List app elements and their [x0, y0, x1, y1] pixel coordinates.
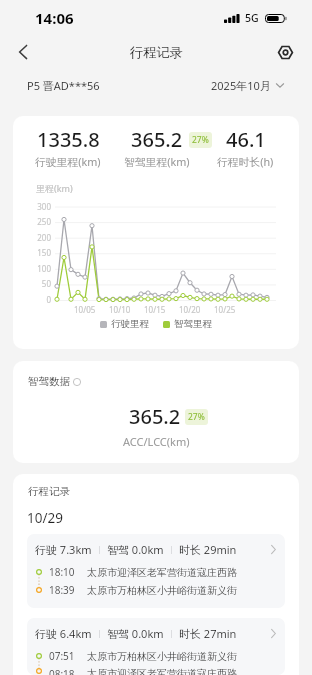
staticText: 智驾里程 — [174, 318, 212, 330]
staticText: 250 — [37, 216, 51, 227]
staticText: 27% — [192, 134, 209, 146]
staticText: 智驾 0.0km — [107, 542, 164, 557]
staticText: 46.1 — [226, 126, 266, 153]
button[interactable]: P5 晋AD***56 — [27, 78, 100, 93]
staticText: 365.2 — [129, 403, 181, 430]
button[interactable]: 2025年10月 — [211, 78, 284, 93]
staticText: 智驾里程(km) — [124, 154, 190, 169]
staticText: 行程记录 — [28, 485, 70, 498]
staticText: 10/20 — [179, 304, 201, 315]
staticText: 10/10 — [109, 304, 131, 315]
staticText: 10/29 — [27, 509, 63, 527]
staticText: 365.2 — [131, 126, 183, 153]
staticText: 10/05 — [74, 304, 96, 315]
staticText: 2025年10月 — [211, 78, 271, 93]
staticText: 智驾 0.0km — [107, 626, 164, 641]
staticText: 14:06 — [35, 8, 74, 28]
staticText: 行驶里程 — [111, 318, 149, 330]
staticText: 太原市万柏林区小井峪街道新义街 — [87, 584, 237, 597]
staticText: 5G — [245, 11, 259, 25]
button[interactable]: 行驶 6.4km — [27, 618, 285, 675]
staticText: 100 — [37, 263, 51, 274]
staticText: 200 — [37, 232, 51, 243]
staticText: 里程(km) — [36, 182, 73, 194]
staticText: 300 — [37, 201, 51, 212]
staticText: 18:10 — [49, 565, 75, 579]
staticText: 行驶 6.4km — [35, 626, 92, 641]
staticText: 行驶里程(km) — [35, 154, 101, 169]
staticText: 行程时长(h) — [217, 154, 274, 169]
button[interactable]: Back — [5, 36, 41, 68]
staticText: 智驾数据 — [28, 375, 70, 388]
staticText: P5 晋AD***56 — [27, 78, 100, 93]
staticText: 太原市迎泽区老军营街道寇庄西路 — [87, 566, 237, 579]
staticText: 时长 27min — [179, 626, 237, 641]
staticText: ACC/LCC(km) — [123, 434, 190, 449]
staticText: 0 — [46, 294, 51, 305]
staticText: 10/15 — [144, 304, 166, 315]
staticText: 150 — [37, 247, 51, 258]
staticText: 太原市迎泽区老军营街道寇庄西路 — [87, 667, 237, 675]
button[interactable]: 行驶 7.3km — [27, 534, 285, 608]
staticText: 1335.8 — [37, 126, 100, 153]
staticText: 08:18 — [49, 667, 75, 675]
staticText: 07:51 — [49, 649, 75, 663]
staticText: 10/25 — [214, 304, 236, 315]
staticText: 50 — [41, 278, 51, 289]
staticText: 太原市万柏林区小井峪街道新义街 — [87, 650, 237, 663]
button[interactable]: Settings — [269, 36, 301, 68]
staticText: 18:39 — [49, 583, 75, 597]
staticText: 行驶 7.3km — [35, 542, 92, 557]
staticText: 行程记录 — [130, 44, 183, 61]
staticText: 时长 29min — [179, 542, 237, 557]
staticText: 27% — [188, 411, 205, 423]
